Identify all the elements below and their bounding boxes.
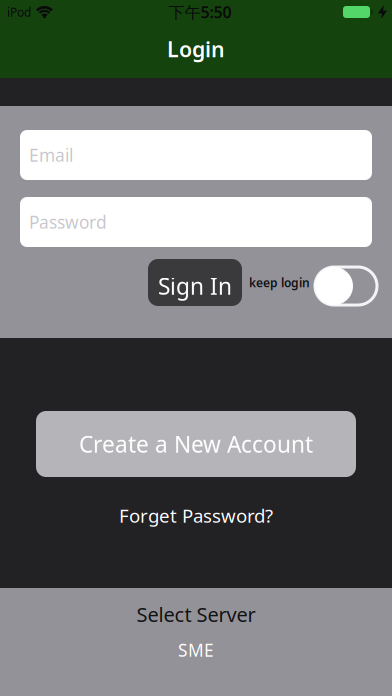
button[interactable]: Forget Password? [119, 503, 273, 528]
staticText: Select Server [136, 601, 255, 628]
staticText: keep login [249, 274, 310, 290]
staticText: Email [29, 143, 73, 166]
staticText: 下午5:50 [168, 1, 231, 23]
staticText: Password [29, 210, 107, 233]
staticText: Forget Password? [119, 503, 273, 528]
staticText: SME [178, 639, 214, 662]
staticText: Login [167, 35, 225, 63]
button[interactable]: Create a New Account [36, 411, 356, 477]
button[interactable]: SME [178, 639, 214, 662]
staticText: Create a New Account [79, 429, 313, 459]
staticText: Sign In [158, 271, 232, 301]
button[interactable]: keep login [315, 267, 377, 305]
button[interactable]: Sign In [148, 259, 242, 306]
staticText: iPod [7, 4, 31, 20]
